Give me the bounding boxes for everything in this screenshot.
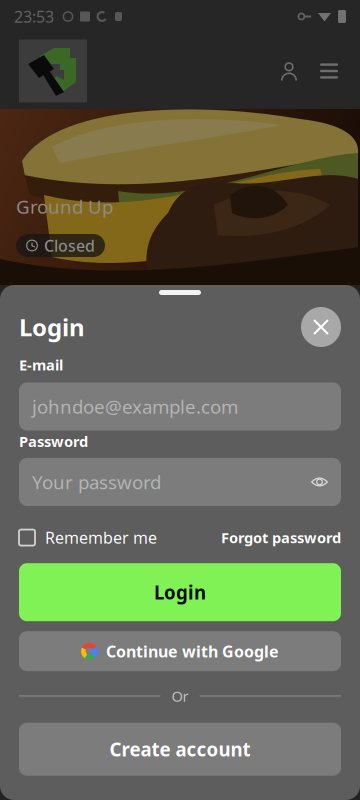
button[interactable]: Close (301, 307, 341, 347)
staticText: Your password (32, 470, 161, 494)
button[interactable]: Forgot password (221, 528, 341, 547)
staticText: Remember me (45, 527, 157, 548)
staticText: Ground Up (16, 194, 113, 219)
staticText: Login (154, 580, 206, 605)
staticText: E-mail (19, 355, 63, 374)
staticText: Forgot password (221, 528, 341, 547)
staticText: Continue with Google (106, 641, 279, 662)
button[interactable]: Menu (309, 49, 349, 93)
button[interactable]: Login (19, 563, 341, 621)
button[interactable]: Continue with Google (19, 631, 341, 671)
button[interactable]: Remember me (19, 527, 157, 548)
button[interactable]: Create account (19, 723, 341, 776)
staticText: Password (19, 431, 88, 451)
staticText: Or (171, 686, 188, 706)
staticText: Login (19, 311, 85, 343)
staticText: johndoe@example.com (32, 394, 238, 419)
button[interactable]: Account (269, 49, 309, 93)
staticText: Create account (109, 737, 250, 762)
staticText: 23:53 (14, 6, 54, 27)
staticText: Closed (44, 235, 95, 256)
